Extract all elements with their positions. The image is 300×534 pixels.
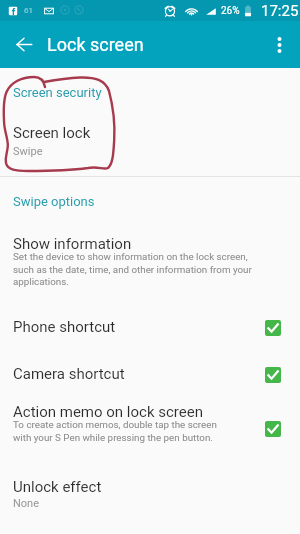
button[interactable]: Action memo on lock screen [0,399,300,449]
staticText: Swipe options [13,194,95,209]
button[interactable]: Phone shortcut [0,316,300,346]
staticText: Unlock effect [13,478,102,496]
staticText: 26% [221,5,240,17]
staticText: 17:25 [261,2,299,20]
staticText: To create action memos, double tap the s… [13,419,217,443]
staticText: Swipe [13,145,43,158]
button[interactable]: Swipe options [13,194,95,209]
staticText: Screen lock [13,124,91,142]
staticText: None [13,497,40,510]
staticText: Screen security [13,85,102,100]
staticText: Action memo on lock screen [13,403,203,421]
staticText: Set the device to show information on th… [13,251,252,287]
button[interactable]: Screen security [13,85,102,100]
staticText: Show information [13,235,132,253]
button[interactable]: Camera shortcut [0,363,300,393]
staticText: Lock screen [47,34,144,55]
button[interactable]: More options [258,21,300,68]
button[interactable]: Unlock effect [13,478,102,510]
button[interactable]: Show information [0,231,300,293]
staticText: Camera shortcut [13,365,125,383]
staticText: Phone shortcut [13,318,116,336]
button[interactable]: Navigate up [0,21,47,68]
staticText: 61 [24,6,33,15]
button[interactable]: Screen lock [13,124,91,158]
